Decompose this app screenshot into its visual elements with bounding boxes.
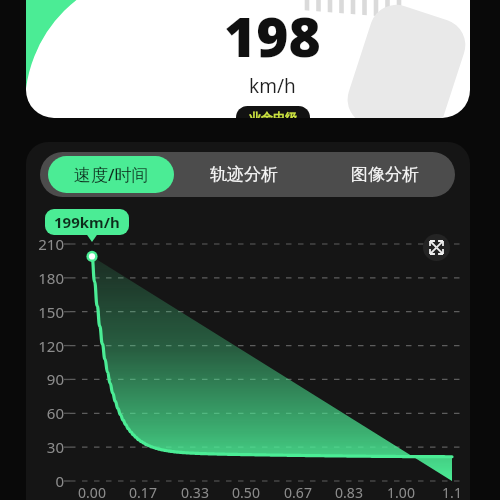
staticText: km/h	[249, 73, 296, 99]
staticText: 0.50	[223, 483, 269, 500]
staticText: 业余中级	[249, 110, 297, 118]
staticText: 图像分析	[351, 164, 419, 185]
staticText: 0.83	[326, 483, 372, 500]
button[interactable]: 业余中级	[236, 106, 310, 118]
button[interactable]: 198	[26, 0, 470, 118]
staticText: 0.17	[120, 483, 166, 500]
staticText: 120	[20, 336, 64, 356]
staticText: 210	[20, 234, 64, 254]
button[interactable]: 轨迹分析	[174, 152, 314, 197]
staticText: 速度/时间	[74, 163, 149, 186]
staticText: 150	[20, 302, 64, 322]
staticText: 180	[20, 268, 64, 288]
staticText: 90	[20, 369, 64, 389]
staticText: 0	[20, 471, 64, 491]
staticText: 1.00	[378, 483, 424, 500]
staticText: 0.67	[275, 483, 321, 500]
staticText: 1.1	[429, 483, 475, 500]
button[interactable]: Expand chart	[423, 234, 450, 261]
staticText: 0.00	[69, 483, 115, 500]
staticText: 198	[224, 0, 321, 73]
staticText: 轨迹分析	[210, 164, 278, 185]
staticText: 60	[20, 403, 64, 423]
staticText: 30	[20, 437, 64, 457]
staticText: 0.33	[172, 483, 218, 500]
staticText: 199km/h	[54, 212, 120, 232]
button[interactable]: 图像分析	[314, 152, 455, 197]
button[interactable]: 速度/时间	[48, 156, 174, 193]
